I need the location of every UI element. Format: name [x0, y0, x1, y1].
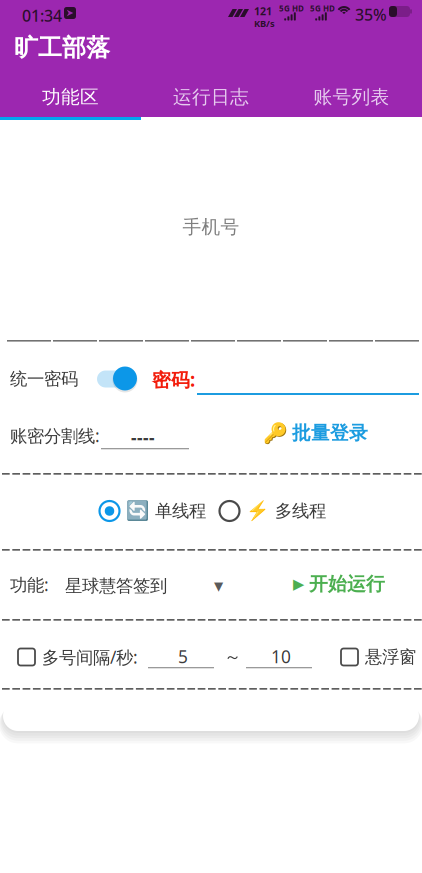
staticText: 5	[178, 645, 188, 668]
staticText: 账密分割线:	[10, 424, 100, 447]
button[interactable]: 手机号	[0, 120, 422, 334]
staticText: 多线程	[275, 500, 326, 522]
staticText: 功能区	[42, 85, 99, 108]
button[interactable]: 🔑	[263, 420, 368, 446]
staticText: ▶	[293, 576, 304, 592]
button[interactable]: 悬浮窗	[341, 645, 416, 669]
button[interactable]: 账号列表	[281, 78, 422, 116]
button[interactable]: 统一密码	[10, 366, 137, 392]
staticText: 账号列表	[314, 85, 390, 108]
button[interactable]: 功能区	[0, 78, 141, 116]
staticText: 121	[254, 4, 272, 18]
staticText: 5G HD	[310, 3, 335, 14]
staticText: 手机号	[182, 215, 239, 238]
button[interactable]: 星球慧答签到	[65, 573, 223, 599]
staticText: 🔄	[126, 500, 149, 522]
staticText: ----	[131, 426, 155, 449]
staticText: 5G HD	[279, 3, 304, 14]
staticText: 星球慧答签到	[65, 575, 167, 597]
button[interactable]: 运行日志	[141, 78, 281, 116]
staticText: 悬浮窗	[365, 646, 416, 668]
staticText: 功能:	[10, 573, 49, 596]
button[interactable]: ▶	[293, 571, 385, 597]
button[interactable]: ⚡	[219, 498, 326, 524]
staticText: 密码:	[152, 367, 195, 392]
staticText: 多号间隔/秒:	[42, 645, 138, 668]
staticText: ⚡	[246, 500, 269, 522]
staticText: 运行日志	[173, 85, 249, 108]
button[interactable]: 10	[246, 645, 312, 673]
staticText: KB/s	[254, 17, 275, 30]
staticText: 单线程	[155, 500, 206, 522]
staticText: 统一密码	[10, 368, 78, 390]
button[interactable]: 🔄	[99, 498, 206, 524]
staticText: 批量登录	[292, 421, 368, 444]
staticText: ▼	[214, 579, 223, 593]
staticText: 35%	[355, 4, 387, 25]
button[interactable]: 5	[148, 645, 214, 673]
staticText: 开始运行	[309, 572, 385, 595]
staticText: 01:34	[22, 5, 62, 26]
button[interactable]: 多号间隔/秒:	[18, 645, 138, 669]
staticText: ～	[224, 646, 241, 667]
staticText: 🔑	[263, 422, 288, 444]
staticText: 10	[271, 645, 291, 668]
button[interactable]: ----	[101, 424, 189, 454]
staticText: 旷工部落	[14, 33, 110, 62]
